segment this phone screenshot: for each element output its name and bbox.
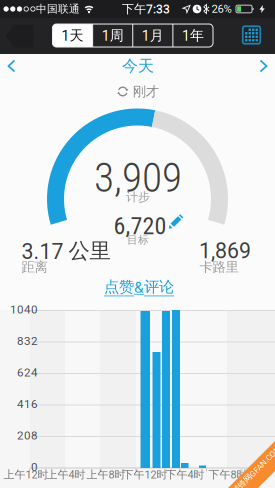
staticText: 1周 [102,27,124,44]
button[interactable]: 今天 [122,56,154,76]
staticText: 今天 [122,56,154,76]
staticText: 3,909 [94,153,182,202]
staticText: 下午4时 [165,468,204,481]
staticText: 208 [17,429,38,442]
staticText: 832 [17,334,38,348]
button[interactable]: Refresh [117,83,159,100]
staticText: 下午12时 [122,468,167,481]
staticText: 1年 [182,27,204,44]
staticText: 1040 [10,303,38,316]
staticText: 624 [17,366,38,379]
staticText: 刚才 [133,83,159,100]
staticText: 距离 [21,259,47,275]
staticText: 上午12时 [3,468,48,481]
staticText: 0 [31,460,38,474]
staticText: 威锋网GFAN.COM [224,464,275,475]
staticText: 计步 [126,190,150,204]
staticText: 26% [211,2,231,16]
staticText: 目标 [127,233,149,246]
staticText: 下午7:33 [122,1,170,16]
staticText: 6,720 [113,212,166,240]
staticText: 卡路里 [199,259,238,275]
staticText: 1天 [62,27,84,44]
staticText: 3.17 公里 [21,238,110,264]
staticText: 416 [17,397,38,411]
staticText: 上午4时 [46,468,85,481]
staticText: 1月 [142,27,164,44]
button[interactable]: 1天 [52,24,93,47]
button[interactable]: Edit goal [167,212,185,231]
staticText: 下午8时 [208,468,247,481]
button[interactable]: 点赞&评论 [104,277,174,297]
button[interactable]: 1月 [133,24,173,47]
staticText: 上午8时 [86,468,125,481]
staticText: 点赞&评论 [104,277,174,297]
button[interactable]: Calendar [240,24,262,46]
button[interactable]: Next day [254,54,272,77]
staticText: 1,869 [199,238,251,263]
button[interactable]: 1年 [173,24,213,47]
button[interactable]: Previous day [2,54,20,77]
staticText: 中国联通 [36,2,80,16]
button[interactable]: 1周 [93,24,133,47]
